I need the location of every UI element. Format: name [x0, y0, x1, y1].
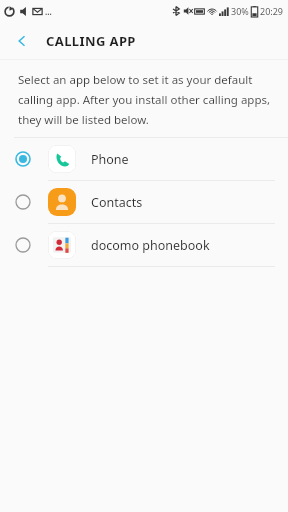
staticText: calling app. After you install other cal… [18, 92, 271, 108]
staticText: Phone [91, 151, 129, 168]
staticText: ... [45, 6, 52, 17]
button[interactable]: docomo phonebook [0, 224, 288, 266]
button[interactable]: Navigate up [8, 27, 36, 55]
button[interactable]: Contacts [0, 181, 288, 223]
staticText: docomo phonebook [91, 237, 210, 254]
staticText: Contacts [91, 194, 143, 211]
staticText: they will be listed below. [18, 112, 149, 128]
staticText: 30% [231, 5, 249, 17]
staticText: Select an app below to set it as your de… [18, 72, 253, 88]
staticText: 20:29 [260, 5, 284, 17]
staticText: CALLING APP [46, 32, 136, 50]
button[interactable]: Phone [0, 138, 288, 180]
